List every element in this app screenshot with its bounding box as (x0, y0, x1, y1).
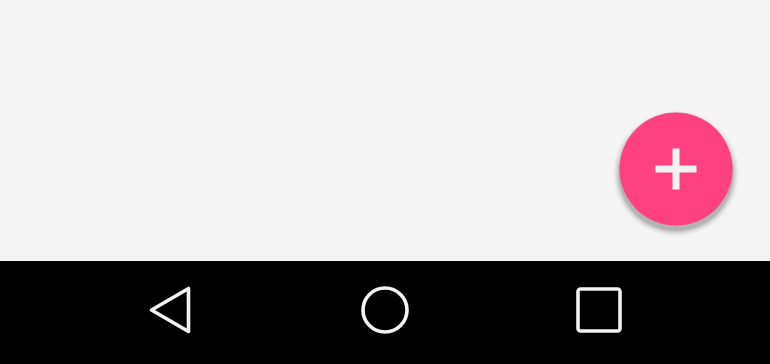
button[interactable]: Recent apps (561, 272, 637, 348)
button[interactable]: Back (132, 272, 208, 348)
button[interactable]: Add (620, 112, 733, 225)
button[interactable]: Home (347, 272, 423, 348)
